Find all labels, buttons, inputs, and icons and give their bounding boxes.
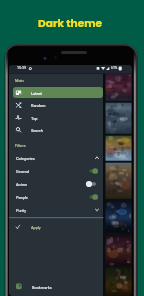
staticText: Main: [15, 78, 24, 83]
staticText: Search: [31, 128, 43, 133]
button[interactable]: [13, 87, 103, 99]
button[interactable]: [13, 99, 103, 111]
staticText: Bookmarks: [32, 285, 52, 290]
staticText: Random: [31, 103, 46, 108]
button[interactable]: [9, 165, 103, 178]
staticText: Dark theme: [38, 16, 102, 31]
staticText: Categories: [16, 156, 35, 161]
staticText: Anime: [16, 182, 28, 187]
staticText: Filters: [15, 143, 26, 148]
staticText: 15:39: [17, 66, 26, 70]
button[interactable]: [13, 111, 103, 123]
staticText: Apply: [31, 225, 41, 230]
button[interactable]: [9, 281, 103, 294]
button[interactable]: [9, 151, 103, 164]
staticText: Top: [31, 116, 38, 121]
staticText: Purity: [16, 208, 26, 213]
staticText: Latest: [31, 91, 42, 96]
button[interactable]: [13, 87, 103, 98]
button[interactable]: [9, 178, 103, 191]
button[interactable]: [9, 221, 103, 233]
staticText: 61%: [111, 66, 118, 70]
button[interactable]: [9, 203, 103, 216]
button[interactable]: [9, 191, 103, 204]
staticText: General: [16, 169, 30, 174]
staticText: People: [16, 195, 28, 200]
button[interactable]: [13, 124, 103, 136]
